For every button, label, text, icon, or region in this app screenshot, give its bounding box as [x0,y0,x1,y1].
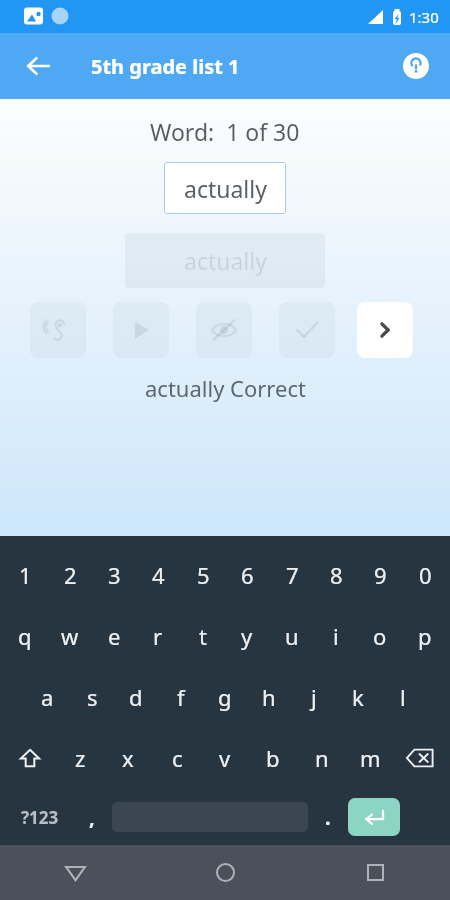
staticText: f [177,682,185,712]
button[interactable]: actually [125,233,325,288]
staticText: w [61,621,79,651]
button[interactable]: 1 [6,554,44,596]
button[interactable]: Shift [10,737,50,779]
button[interactable]: b [254,737,292,779]
button[interactable]: h [250,676,288,718]
staticText: 3 [108,560,121,590]
staticText: o [373,621,387,651]
button[interactable]: n [303,737,341,779]
button[interactable]: u [273,615,311,657]
staticText: u [285,621,299,651]
button[interactable]: 5 [184,554,222,596]
button[interactable]: 8 [317,554,355,596]
button[interactable]: 4 [139,554,177,596]
button[interactable]: Backspace [400,737,440,779]
staticText: i [333,621,339,651]
staticText: 5th grade list 1 [91,53,240,80]
button[interactable]: i [317,615,355,657]
staticText: m [360,743,381,773]
button[interactable]: p [406,615,444,657]
button[interactable]: Play [113,302,169,358]
staticText: l [400,682,406,712]
button[interactable]: o [361,615,399,657]
staticText: d [129,682,143,712]
button[interactable]: q [6,615,44,657]
button[interactable]: Back [0,845,150,900]
staticText: y [241,621,253,651]
button[interactable]: . [308,793,348,841]
staticText: 5 [197,560,210,590]
button[interactable]: j [295,676,333,718]
button[interactable]: f [162,676,200,718]
staticText: . [325,804,331,831]
button[interactable]: Home [150,845,300,900]
button[interactable]: m [351,737,389,779]
button[interactable]: , [72,793,112,841]
staticText: k [352,682,364,712]
staticText: h [262,682,276,712]
button[interactable]: a [28,676,66,718]
staticText: a [41,682,54,712]
staticText: actually [184,245,267,276]
button[interactable]: Enter [348,798,400,836]
staticText: 2 [64,560,77,590]
staticText: 1:30 [409,7,439,27]
button[interactable]: k [339,676,377,718]
button[interactable]: 0 [406,554,444,596]
button[interactable]: Check [279,302,335,358]
button[interactable]: Hear word [30,302,86,358]
staticText: Word: 1 of 30 [150,116,300,147]
staticText: 9 [374,560,387,590]
button[interactable]: w [51,615,89,657]
button[interactable]: Help [392,42,440,90]
button[interactable]: Back [14,42,62,90]
button[interactable]: Recents [300,845,450,900]
button[interactable]: Hide word [196,302,252,358]
button[interactable]: 2 [51,554,89,596]
button[interactable]: r [139,615,177,657]
staticText: c [172,743,183,773]
button[interactable]: y [228,615,266,657]
staticText: ?123 [21,806,59,829]
button[interactable]: t [184,615,222,657]
staticText: r [153,621,163,651]
staticText: 0 [419,560,432,590]
staticText: b [266,743,280,773]
button[interactable]: v [206,737,244,779]
staticText: t [199,621,207,651]
staticText: z [75,743,86,773]
staticText: s [87,682,98,712]
staticText: actually Correct [145,373,306,403]
button[interactable]: e [95,615,133,657]
staticText: n [315,743,329,773]
button[interactable]: s [73,676,111,718]
staticText: p [418,621,432,651]
staticText: e [108,621,121,651]
staticText: j [311,682,317,712]
button[interactable]: 7 [273,554,311,596]
staticText: 8 [330,560,343,590]
staticText: actually [184,173,267,204]
staticText: g [218,682,232,712]
button[interactable]: Next word [357,302,413,358]
button[interactable]: 3 [95,554,133,596]
staticText: q [18,621,32,651]
staticText: 6 [241,560,254,590]
staticText: , [89,804,95,831]
button[interactable]: 6 [228,554,266,596]
button[interactable]: actually [164,162,286,214]
staticText: 4 [152,560,165,590]
button[interactable]: l [384,676,422,718]
button[interactable]: c [158,737,196,779]
staticText: v [219,743,231,773]
button[interactable]: d [117,676,155,718]
staticText: 7 [286,560,299,590]
button[interactable]: 9 [361,554,399,596]
button[interactable]: g [206,676,244,718]
button[interactable]: ?123 [8,793,72,841]
button[interactable]: z [61,737,99,779]
staticText: 1 [19,560,32,590]
button[interactable]: x [109,737,147,779]
staticText: x [122,743,134,773]
